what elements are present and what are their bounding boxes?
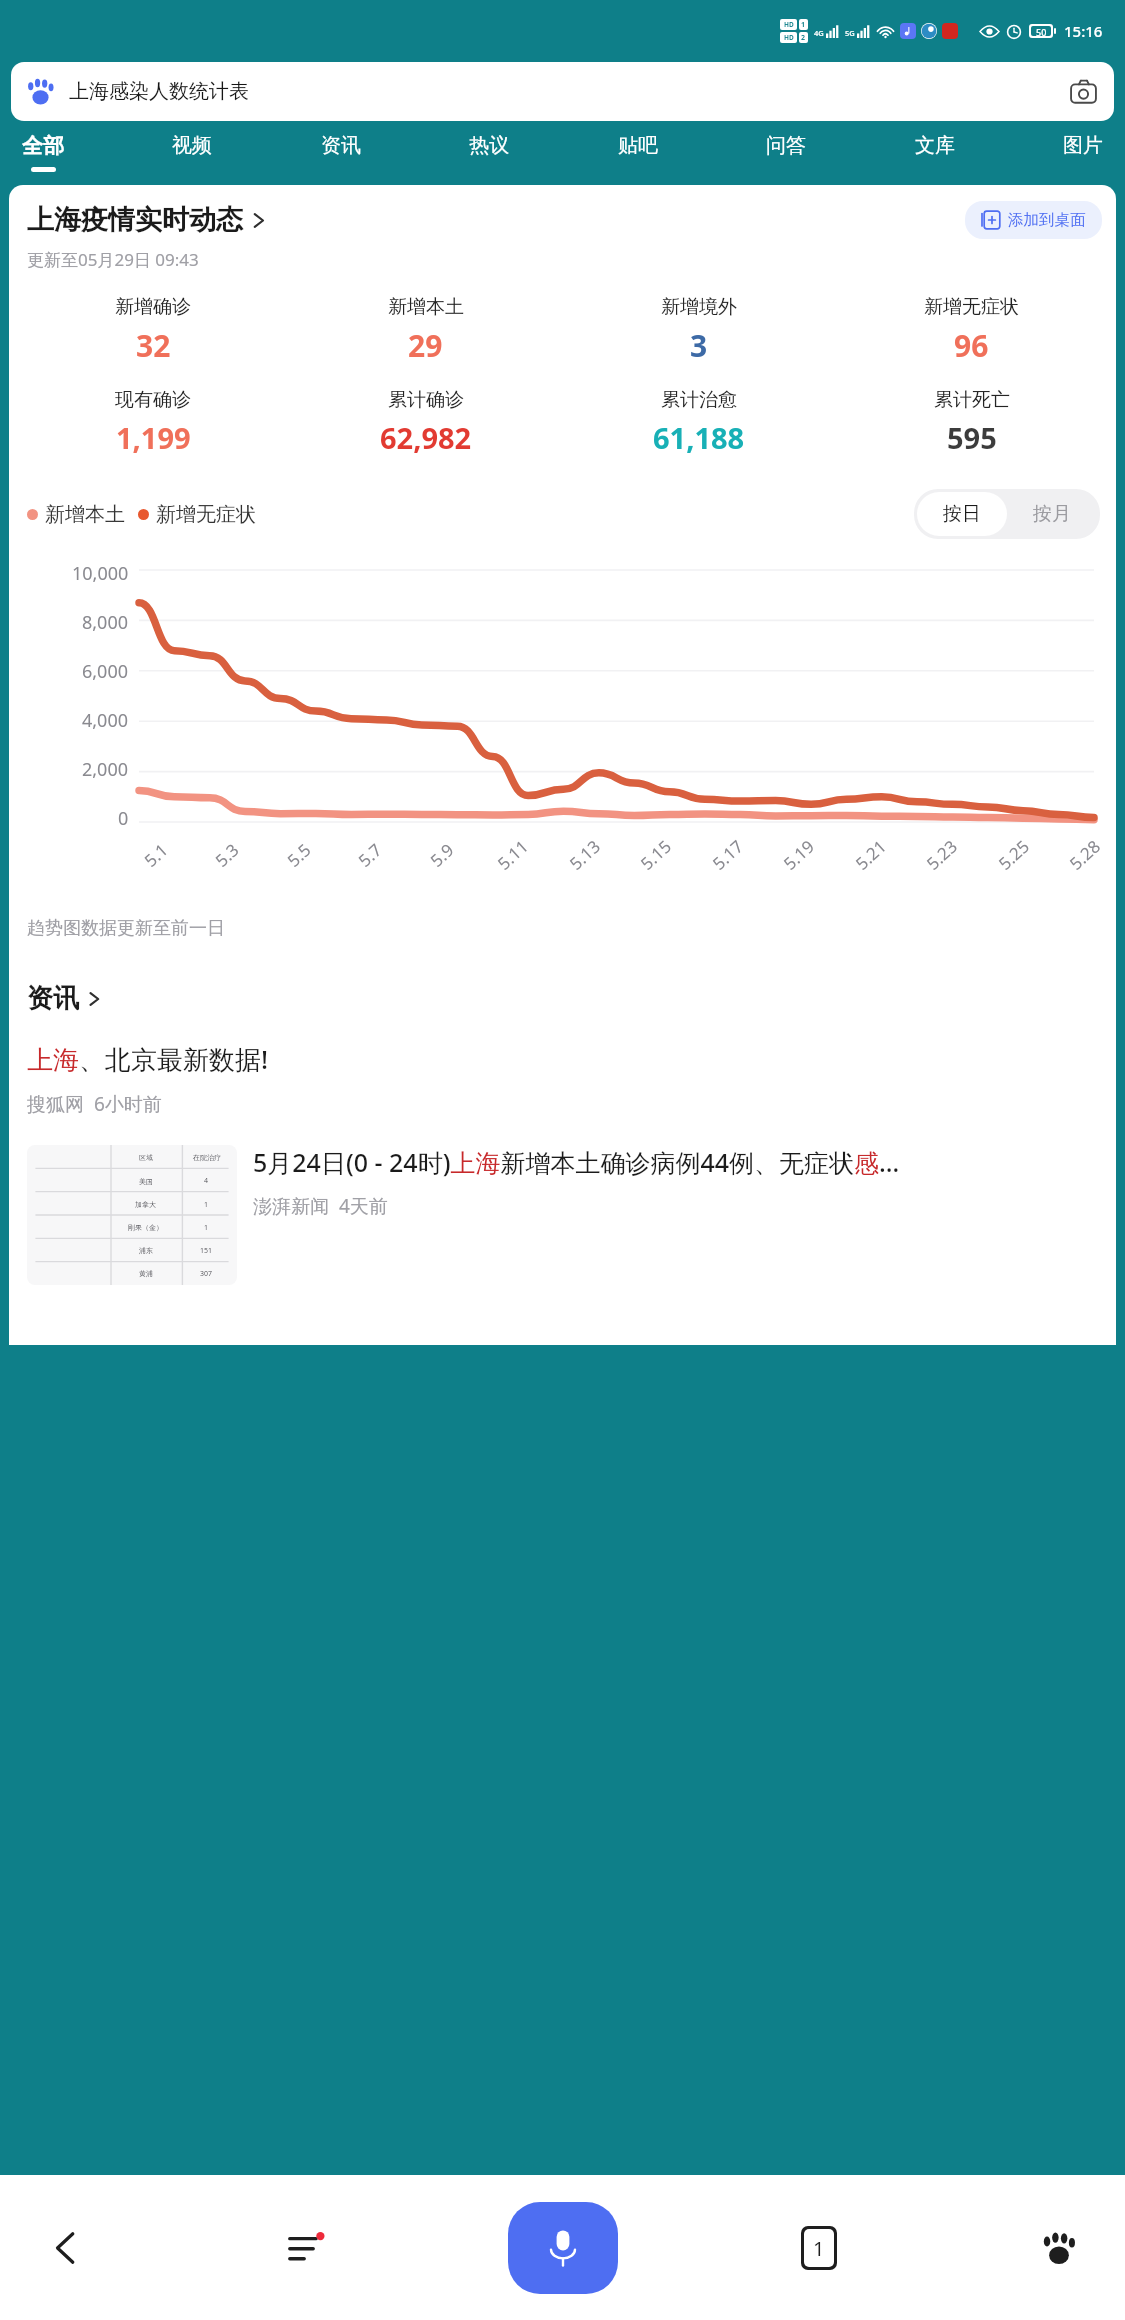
staticText: 32 [136,325,171,366]
staticText: 151 [200,1246,213,1256]
button[interactable]: 文库 [911,133,959,166]
staticText: 视频 [172,133,212,158]
button[interactable]: 资讯 [317,133,365,166]
staticText: 趋势图数据更新至前一日 [27,917,225,940]
staticText: 4G [814,28,824,38]
staticText: 5.11 [492,835,533,875]
staticText: 新增确诊 [115,295,191,319]
button[interactable]: 问答 [762,133,810,166]
staticText: 5.13 [564,835,605,875]
staticText: 5.7 [353,838,387,872]
staticText: 8,000 [82,610,129,635]
staticText: 5.28 [1064,835,1105,875]
staticText: 5.21 [850,835,891,875]
staticText: 资讯 [27,982,79,1015]
staticText: 上海疫情实时动态 [27,203,243,237]
staticText: 1,199 [116,418,191,457]
button[interactable]: 贴吧 [614,133,662,166]
button[interactable]: 添加到桌面 [965,201,1102,239]
staticText: 29 [408,325,443,366]
staticText: 10,000 [72,561,129,586]
staticText: 15:16 [1064,21,1103,41]
staticText: 搜狐网 6小时前 [27,1091,162,1117]
staticText: 累计治愈 [661,388,737,412]
staticText: 上海感染人数统计表 [69,79,249,104]
button[interactable]: 视频 [168,133,216,166]
button[interactable]: 按日 [917,492,1007,536]
staticText: 307 [200,1269,213,1279]
button[interactable]: 上海感染人数统计表 [11,62,1114,121]
staticText: 按日 [943,502,981,526]
button[interactable]: Voice search [508,2202,618,2294]
staticText: 累计死亡 [934,388,1010,412]
button[interactable]: 全部 [18,133,68,172]
staticText: 在院治疗 [193,1153,221,1162]
staticText: 50 [1036,26,1047,36]
button[interactable]: Menu [268,2210,344,2286]
staticText: 新增无症状 [924,295,1019,319]
staticText: 文库 [915,133,955,158]
staticText: 1 [813,2235,825,2262]
staticText: 图片 [1063,133,1103,158]
staticText: 加拿大 [135,1200,156,1209]
staticText: 热议 [469,133,509,158]
staticText: HD [784,33,794,42]
staticText: 新增境外 [661,295,737,319]
staticText: 浦东 [139,1246,153,1255]
staticText: 贴吧 [618,133,658,158]
staticText: 5.17 [707,835,748,875]
staticText: 62,982 [380,418,472,457]
button[interactable]: 资讯 [27,982,101,1015]
staticText: 5.3 [210,838,244,872]
staticText: 5G [845,28,855,38]
staticText: 4,000 [82,708,129,733]
staticText: 新增本土 [45,502,125,527]
staticText: 2,000 [82,757,129,782]
staticText: 1 [204,1223,209,1233]
button[interactable]: 区域 [9,1145,1116,1285]
staticText: 5.23 [921,835,962,875]
staticText: 刚果（金） [128,1223,163,1232]
staticText: 全部 [22,133,64,159]
staticText: 美国 [139,1177,153,1186]
staticText: 问答 [766,133,806,158]
staticText: 添加到桌面 [1008,210,1086,230]
staticText: 现有确诊 [115,388,191,412]
button[interactable]: 上海、北京最新数据! [9,1041,1116,1117]
staticText: 5.19 [778,835,819,875]
staticText: 新增无症状 [156,502,256,527]
staticText: 5.9 [425,838,459,872]
button[interactable]: 热议 [465,133,513,166]
staticText: 3 [690,325,708,366]
staticText: 4 [204,1176,209,1186]
staticText: 1 [801,20,806,30]
staticText: 5.25 [993,835,1034,875]
staticText: 黄浦 [139,1269,153,1278]
staticText: 96 [954,325,989,366]
button[interactable]: 上海疫情实时动态 [27,203,266,237]
staticText: 资讯 [321,133,361,158]
staticText: 累计确诊 [388,388,464,412]
staticText: 61,188 [653,418,745,457]
staticText: HD [784,20,794,29]
staticText: 5.15 [635,835,676,875]
button[interactable]: Mine [1021,2210,1097,2286]
staticText: 按月 [1033,502,1071,526]
staticText: 1 [204,1200,209,1210]
staticText: 6,000 [82,659,129,684]
staticText: 新增本土 [388,295,464,319]
button[interactable]: 图片 [1059,133,1107,166]
staticText: 2 [801,33,806,43]
staticText: 5.5 [282,838,316,872]
button[interactable]: 按月 [1007,492,1097,536]
button[interactable]: Back [28,2210,104,2286]
staticText: 595 [947,418,997,457]
staticText: 5月24日(0 - 24时)上海新增本土确诊病例44例、无症状感… [253,1145,900,1179]
staticText: 0 [118,806,129,831]
button[interactable]: Camera search [1066,75,1100,109]
button[interactable]: Tabs [781,2210,857,2286]
staticText: 更新至05月29日 09:43 [27,248,199,271]
staticText: 区域 [139,1153,153,1162]
staticText: 上海、北京最新数据! [27,1041,269,1077]
staticText: 澎湃新闻 4天前 [253,1193,388,1219]
